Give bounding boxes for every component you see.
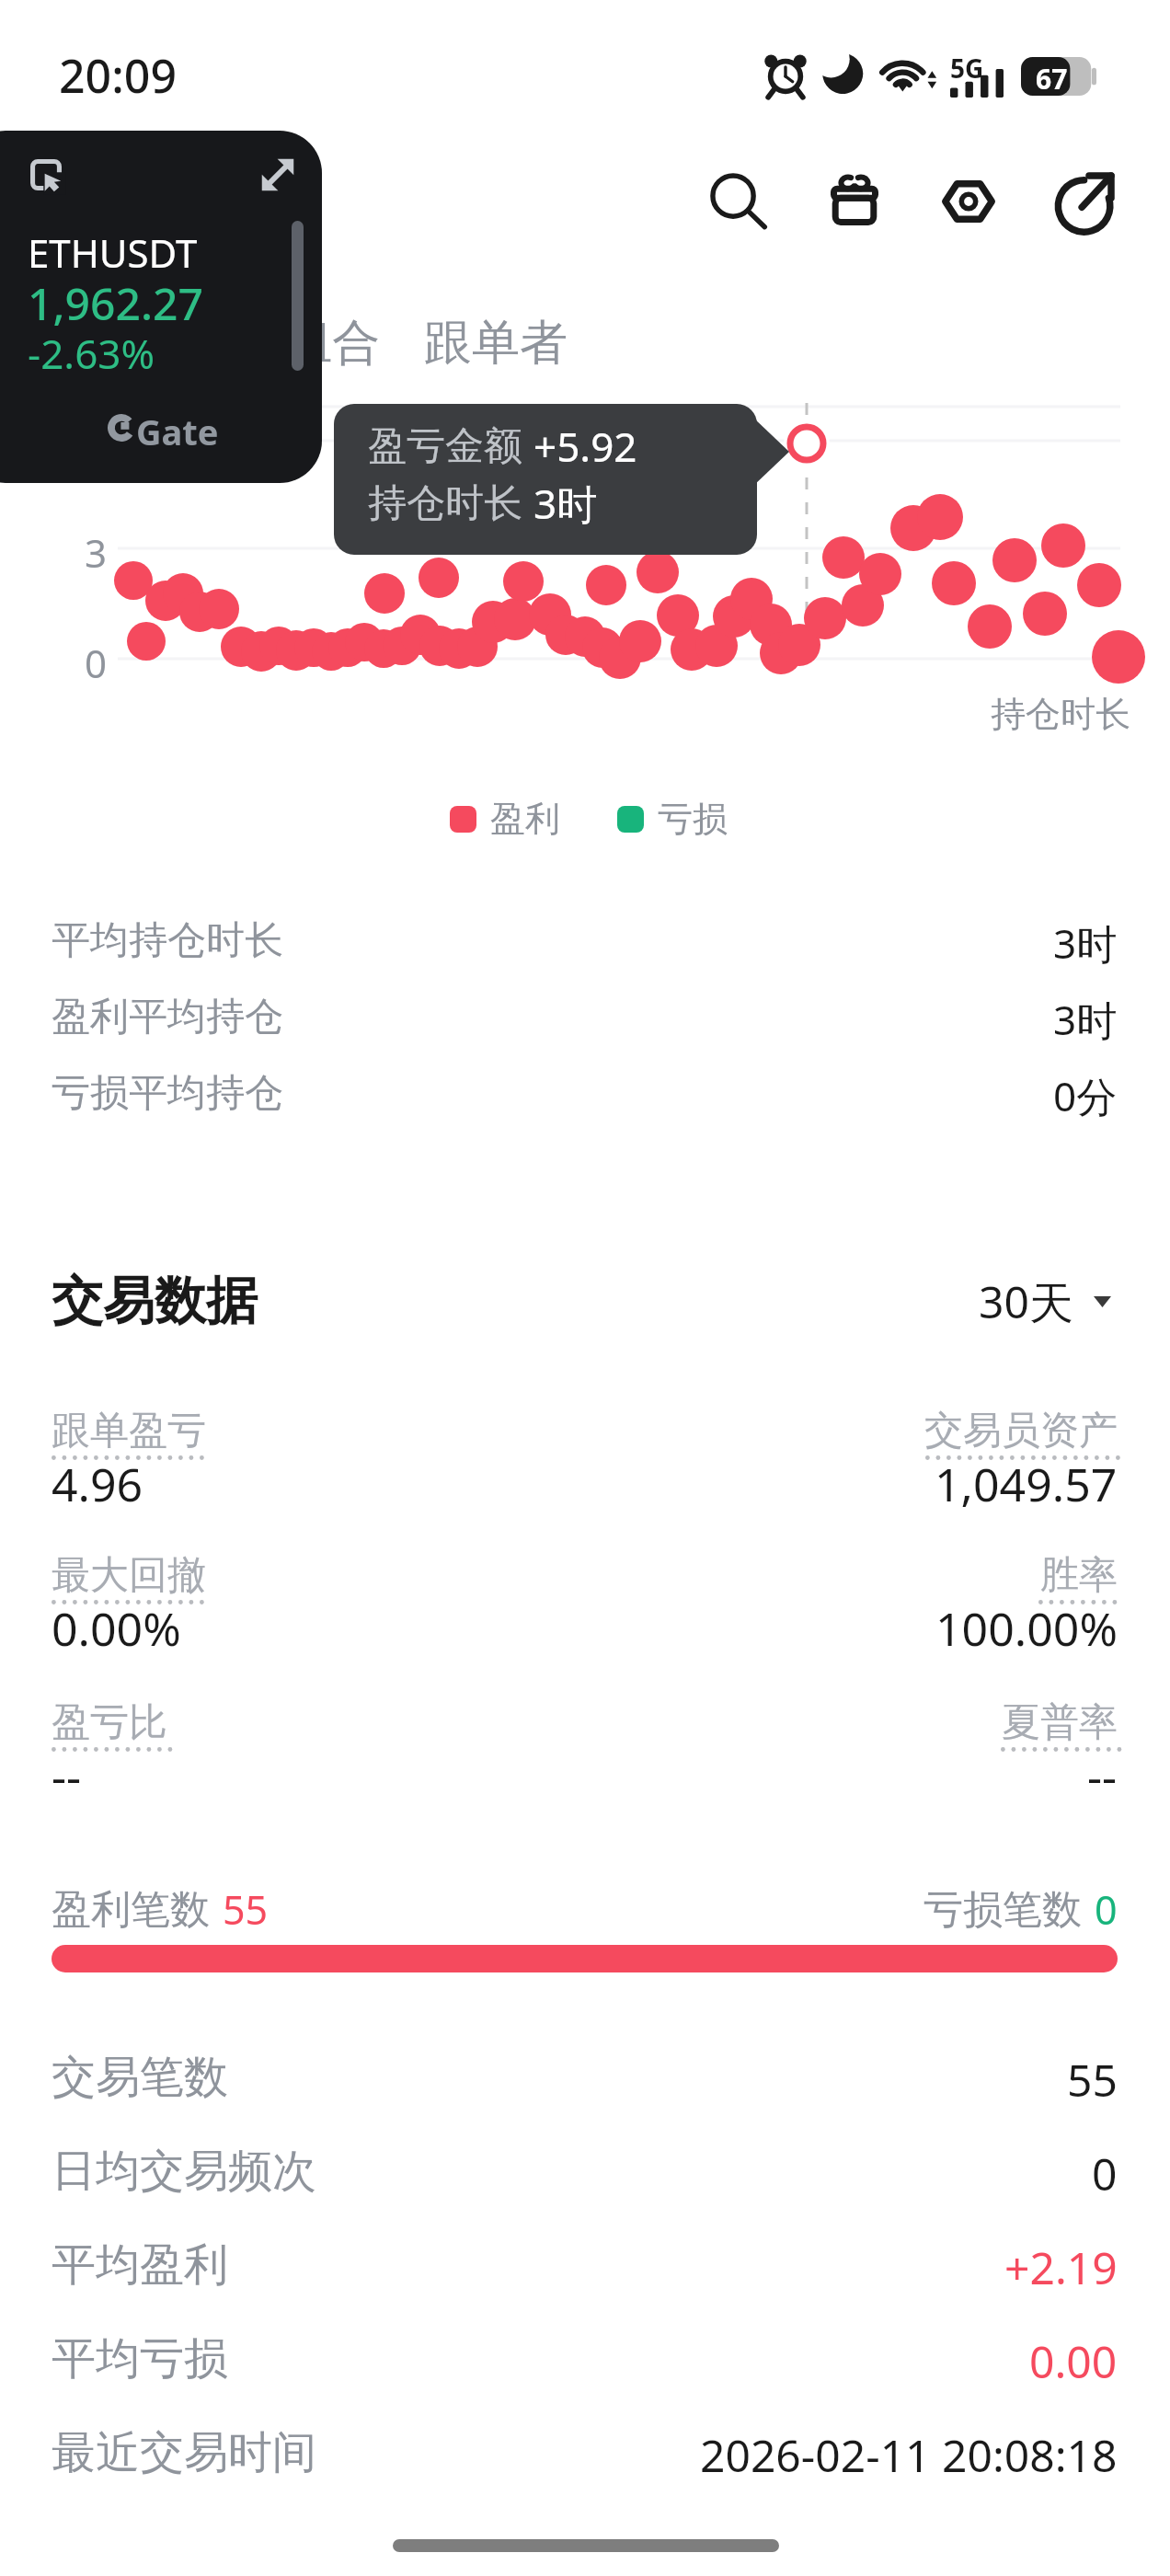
staticText: 3 [85, 526, 108, 579]
staticText: 亏损笔数 [923, 1885, 1082, 1935]
staticText: 55 [1067, 2050, 1118, 2110]
button[interactable]: Share [1034, 153, 1139, 250]
staticText: 平均持仓时长 [52, 916, 283, 965]
button[interactable]: 日均交易频次 [0, 2127, 1170, 2204]
button[interactable]: 盈亏比 [52, 1698, 530, 1814]
staticText: 4.96 [52, 1453, 143, 1515]
staticText: 2026-02-11 20:08:18 [700, 2425, 1118, 2485]
button[interactable]: Search [684, 153, 789, 250]
button[interactable]: 亏损 [617, 797, 728, 841]
staticText: 0 [1095, 1882, 1118, 1937]
staticText: 最大回撤 [52, 1551, 206, 1600]
staticText: 亏损 [658, 797, 728, 841]
button[interactable]: 平均持仓时长 [0, 900, 1170, 972]
button[interactable]: 最大回撤 [52, 1551, 530, 1667]
staticText: 3时 [1053, 915, 1118, 971]
button[interactable]: 30天 [979, 1271, 1111, 1332]
staticText: 20:09 [59, 44, 177, 107]
staticText: 跟单盈亏 [52, 1407, 206, 1455]
staticText: +5.92 [533, 419, 637, 474]
staticText: 盈利 [490, 797, 560, 841]
staticText: 67 [1036, 60, 1068, 98]
button[interactable]: 平均盈利 [0, 2221, 1170, 2298]
button[interactable]: Settings [916, 153, 1021, 250]
staticText: 0 [1092, 2144, 1118, 2203]
staticText: 交易数据 [52, 1269, 258, 1334]
staticText: -- [1087, 1744, 1118, 1807]
staticText: 0.00% [52, 1597, 181, 1660]
button[interactable]: ETHUSDT floating price window [0, 131, 322, 483]
staticText: 0 [85, 637, 108, 689]
button[interactable]: 组合 [284, 313, 380, 374]
staticText: 夏普率 [1002, 1698, 1118, 1747]
staticText: 30天 [979, 1271, 1073, 1332]
button[interactable]: 胜率 [639, 1551, 1118, 1667]
staticText: 盈利平均持仓 [52, 993, 283, 1041]
button[interactable]: 跟单者 [424, 313, 568, 374]
button[interactable]: 交易数据 [52, 313, 243, 374]
staticText: 组合 [284, 313, 380, 374]
staticText: -2.63% [28, 326, 155, 381]
button[interactable]: 亏损平均持仓 [0, 1052, 1170, 1124]
staticText: 平均盈利 [52, 2237, 228, 2293]
staticText: 平均亏损 [52, 2331, 228, 2386]
staticText: 5G [950, 51, 984, 86]
button[interactable]: 交易笔数 [0, 2033, 1170, 2110]
staticText: 跟单者 [424, 313, 568, 374]
staticText: +2.19 [1004, 2237, 1118, 2297]
staticText: -- [52, 1744, 82, 1807]
button[interactable]: 夏普率 [639, 1698, 1118, 1814]
staticText: 持仓时长 [991, 692, 1130, 736]
button[interactable]: 盈利 [450, 797, 560, 841]
button[interactable]: 跟单盈亏 [52, 1407, 530, 1523]
staticText: 盈亏金额 [368, 422, 522, 471]
button[interactable]: 盈利平均持仓 [0, 976, 1170, 1048]
staticText: 日均交易频次 [52, 2144, 316, 2199]
staticText: 0分 [1053, 1068, 1118, 1123]
staticText: 3时 [1053, 992, 1118, 1047]
staticText: 100.00% [935, 1597, 1118, 1660]
button[interactable]: 最近交易时间 [0, 2409, 1170, 2486]
staticText: 盈亏比 [52, 1698, 167, 1747]
staticText: 3时 [533, 476, 598, 531]
staticText: 1,049.57 [935, 1453, 1118, 1515]
staticText: 55 [223, 1882, 269, 1937]
staticText: 0.00 [1029, 2331, 1118, 2391]
staticText: 最近交易时间 [52, 2425, 316, 2480]
staticText: Gate [136, 408, 219, 455]
button[interactable]: 平均亏损 [0, 2315, 1170, 2392]
button[interactable]: 交易员资产 [639, 1407, 1118, 1523]
button[interactable]: Rewards [802, 153, 907, 250]
staticText: 亏损平均持仓 [52, 1069, 283, 1118]
staticText: 交易数据 [52, 313, 243, 374]
staticText: 交易笔数 [52, 2050, 228, 2105]
staticText: 交易员资产 [924, 1407, 1118, 1455]
staticText: ETHUSDT [28, 226, 198, 279]
staticText: 1,962.27 [28, 273, 203, 333]
staticText: 持仓时长 [368, 479, 522, 528]
staticText: 盈利笔数 [52, 1885, 210, 1935]
staticText: 胜率 [1040, 1551, 1118, 1600]
